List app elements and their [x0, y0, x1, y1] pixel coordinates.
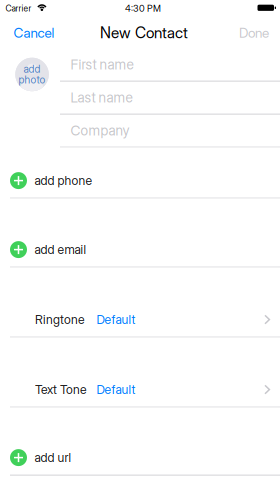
staticText: First name	[70, 56, 133, 73]
button[interactable]: Text Tone	[0, 372, 280, 407]
staticText: add email	[34, 242, 86, 257]
staticText: add phone	[34, 173, 92, 188]
button[interactable]: Done	[229, 20, 280, 46]
staticText: Default	[96, 312, 135, 327]
staticText: Company	[70, 122, 129, 139]
button[interactable]: add phone	[0, 163, 280, 198]
staticText: Carrier	[5, 3, 31, 14]
staticText: 4:30 PM	[125, 3, 161, 14]
button[interactable]: Last name	[0, 81, 280, 114]
staticText: Text Tone	[35, 382, 87, 397]
button[interactable]: add email	[0, 232, 280, 267]
button[interactable]: add photo	[15, 58, 49, 91]
button[interactable]: Company	[0, 114, 280, 147]
staticText: Default	[96, 382, 135, 397]
staticText: Cancel	[13, 24, 54, 41]
staticText: Last name	[70, 89, 132, 106]
staticText: Ringtone	[35, 312, 85, 327]
staticText: New Contact	[100, 23, 188, 42]
button[interactable]: Cancel	[0, 20, 64, 46]
staticText: photo	[19, 73, 46, 86]
button[interactable]: add url	[0, 440, 280, 475]
staticText: add	[24, 63, 41, 75]
staticText: Done	[239, 24, 269, 41]
staticText: add url	[34, 450, 71, 465]
button[interactable]: Ringtone	[0, 302, 280, 337]
button[interactable]: First name	[0, 48, 280, 81]
